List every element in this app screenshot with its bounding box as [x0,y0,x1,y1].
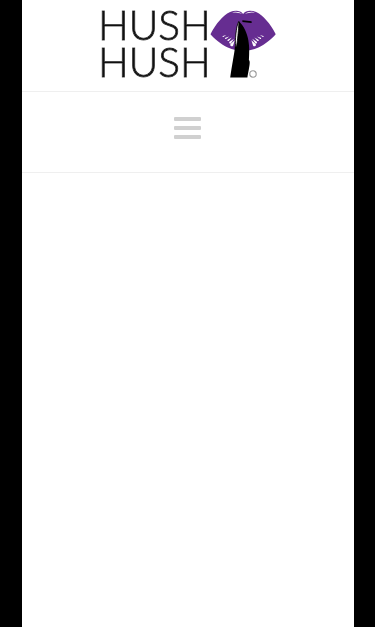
staticText: HUSH [98,0,211,49]
staticText: HUSH [98,0,211,49]
staticText: HUSH [98,37,211,86]
button[interactable]: Open navigation menu [162,107,213,149]
staticText: HUSH [98,37,211,86]
